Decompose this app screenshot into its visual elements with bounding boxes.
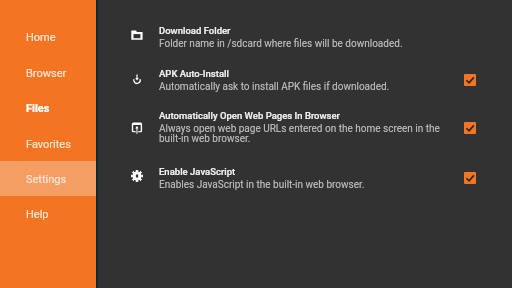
staticText: Home (26, 31, 56, 44)
staticText: Always open web page URLs entered on the… (159, 123, 449, 144)
button[interactable]: Toggle setting (464, 172, 476, 184)
other: Download folder (130, 30, 144, 44)
button[interactable]: APK auto install (0, 60, 512, 103)
staticText: Download Folder (159, 25, 459, 36)
staticText: Favorites (26, 138, 71, 151)
staticText: Automatically Open Web Pages In Browser (159, 110, 459, 121)
staticText: Help (26, 208, 49, 221)
staticText: Enables JavaScript in the built-in web b… (159, 179, 449, 191)
button[interactable]: Toggle setting (464, 122, 476, 134)
staticText: APK Auto-Install (159, 68, 459, 79)
button[interactable]: Settings (0, 161, 96, 196)
staticText: Enable JavaScript (159, 166, 459, 177)
button[interactable]: Open web pages in browser (0, 102, 512, 158)
button[interactable]: Help (0, 196, 96, 231)
staticText: Automatically ask to install APK files i… (159, 81, 449, 93)
button[interactable]: Download folder (0, 17, 512, 60)
other: APK auto install (130, 74, 144, 88)
staticText: Settings (26, 173, 67, 186)
button[interactable]: Enable JavaScript (0, 158, 512, 201)
staticText: Folder name in /sdcard where files will … (159, 38, 449, 50)
staticText: Files (26, 102, 50, 115)
staticText: Browser (26, 67, 67, 80)
other: Enable JavaScript (130, 169, 144, 183)
button[interactable]: Browser (0, 55, 96, 90)
button[interactable]: Files (0, 90, 96, 125)
button[interactable]: Favorites (0, 126, 96, 161)
other: Open web pages in browser (130, 122, 144, 136)
button[interactable]: Home (0, 19, 96, 54)
button[interactable]: Toggle setting (464, 74, 476, 86)
